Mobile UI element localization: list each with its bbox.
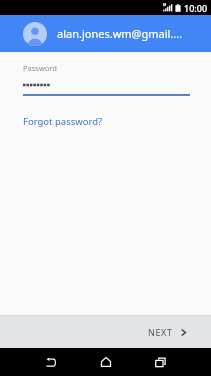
button[interactable]: Recent apps [144, 348, 176, 376]
staticText: Password [23, 63, 57, 73]
button[interactable]: NEXT [134, 319, 211, 345]
staticText: alan.jones.wm@gmail.... [57, 26, 183, 41]
staticText: Forgot password? [23, 115, 103, 128]
button[interactable]: Forgot password? [0, 114, 111, 130]
staticText: 10:00 [184, 2, 208, 14]
button[interactable]: Back [35, 348, 67, 376]
button[interactable]: Home [90, 348, 122, 376]
staticText: NEXT [148, 326, 173, 338]
